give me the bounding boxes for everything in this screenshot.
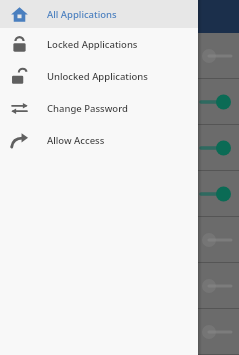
button[interactable] <box>0 79 239 125</box>
staticText: All Applications <box>47 8 117 21</box>
staticText: Allow Access <box>47 134 105 147</box>
button[interactable]: Locked Applications <box>0 28 198 60</box>
button[interactable] <box>0 125 239 171</box>
button[interactable] <box>0 263 239 309</box>
button[interactable] <box>0 309 239 355</box>
button[interactable] <box>0 217 239 263</box>
staticText: Locked Applications <box>47 38 138 51</box>
button[interactable]: Allow Access <box>0 124 198 156</box>
button[interactable] <box>0 33 239 79</box>
button[interactable]: Unlocked Applications <box>0 60 198 92</box>
staticText: Unlocked Applications <box>47 70 148 83</box>
staticText: Change Password <box>47 102 128 115</box>
button[interactable] <box>0 171 239 217</box>
button[interactable]: Change Password <box>0 92 198 124</box>
button[interactable]: All Applications <box>0 0 198 28</box>
